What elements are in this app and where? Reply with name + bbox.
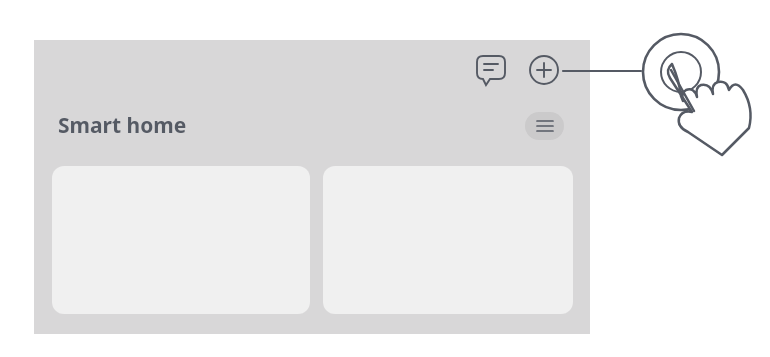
staticText: Smart home [58, 111, 187, 140]
button[interactable]: Add [529, 55, 559, 85]
button[interactable]: Messages [474, 53, 508, 89]
button[interactable]: Menu [525, 112, 564, 140]
